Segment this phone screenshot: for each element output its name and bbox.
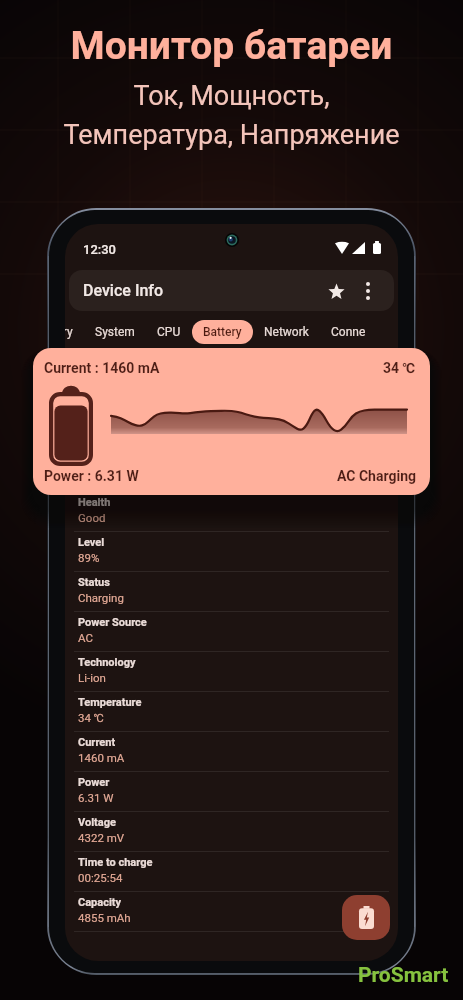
- staticText: Technology: [78, 656, 136, 669]
- button[interactable]: Network: [253, 320, 320, 344]
- staticText: Network: [264, 325, 309, 339]
- button[interactable]: Capacity: [65, 892, 398, 932]
- staticText: AC Charging: [337, 468, 416, 484]
- staticText: ProSmart: [358, 963, 449, 988]
- button[interactable]: CPU: [146, 320, 192, 344]
- staticText: 1460 mA: [78, 751, 125, 764]
- button[interactable]: Technology: [65, 652, 398, 692]
- staticText: Current: [78, 736, 116, 749]
- staticText: Voltage: [78, 816, 116, 829]
- button[interactable]: ory: [65, 320, 84, 344]
- staticText: Монитор батареи: [0, 23, 463, 69]
- staticText: ory: [65, 325, 73, 339]
- staticText: Status: [78, 576, 110, 589]
- button[interactable]: More options: [354, 277, 382, 305]
- button[interactable]: Temperature: [65, 692, 398, 732]
- button[interactable]: System: [84, 320, 146, 344]
- button[interactable]: Battery: [192, 320, 253, 344]
- button[interactable]: Status: [65, 572, 398, 612]
- staticText: 4855 mAh: [78, 911, 131, 924]
- staticText: Connectivity: [331, 325, 367, 339]
- staticText: CPU: [157, 325, 181, 339]
- staticText: Ток, Мощность, Температура, Напряжение: [0, 80, 463, 150]
- button[interactable]: Power: [65, 772, 398, 812]
- button[interactable]: Device Info: [69, 270, 394, 311]
- staticText: 4322 mV: [78, 831, 125, 844]
- staticText: System: [95, 325, 135, 339]
- button[interactable]: Current: [65, 732, 398, 772]
- button[interactable]: Connectivity: [320, 320, 378, 344]
- button[interactable]: Level: [65, 532, 398, 572]
- staticText: Device Info: [83, 281, 164, 300]
- staticText: Charging: [78, 591, 124, 604]
- button[interactable]: Favorite: [322, 277, 350, 305]
- staticText: 12:30: [83, 242, 117, 257]
- staticText: Power: [78, 776, 110, 789]
- staticText: 89%: [78, 551, 100, 564]
- staticText: Current : 1460 mA: [44, 360, 160, 376]
- staticText: Power Source: [78, 616, 147, 629]
- button[interactable]: Health: [65, 492, 398, 532]
- button[interactable]: Voltage: [65, 812, 398, 852]
- button[interactable]: Time to charge: [65, 852, 398, 892]
- staticText: Health: [78, 496, 111, 509]
- staticText: Level: [78, 536, 105, 549]
- staticText: Good: [78, 511, 106, 524]
- staticText: Time to charge: [78, 856, 153, 869]
- button[interactable]: Battery status: [342, 895, 390, 940]
- staticText: Power : 6.31 W: [44, 468, 139, 484]
- staticText: 00:25:54: [78, 871, 123, 884]
- staticText: AC: [78, 631, 93, 644]
- staticText: Battery: [203, 325, 242, 339]
- staticText: 34 ℃: [383, 360, 416, 376]
- staticText: Li-ion: [78, 671, 106, 684]
- button[interactable]: Power Source: [65, 612, 398, 652]
- staticText: 34 ℃: [78, 711, 104, 724]
- staticText: Capacity: [78, 896, 122, 909]
- staticText: 6.31 W: [78, 791, 114, 804]
- staticText: Temperature: [78, 696, 142, 709]
